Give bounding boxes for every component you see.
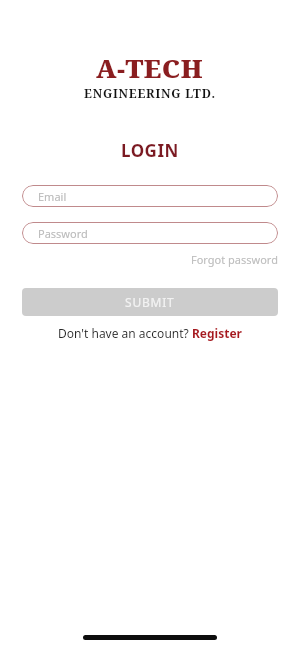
button[interactable]: SUBMIT	[22, 288, 278, 316]
button[interactable]: Forgot password	[191, 252, 278, 267]
staticText: LOGIN	[121, 139, 179, 162]
button[interactable]: Register	[192, 325, 242, 341]
staticText: A-TECH	[96, 50, 204, 85]
staticText: Email	[38, 189, 67, 204]
staticText: Don't have an account?	[58, 325, 192, 341]
button[interactable]: Password	[22, 222, 278, 244]
staticText: Password	[38, 226, 88, 241]
staticText: SUBMIT	[125, 294, 175, 310]
staticText: Register	[192, 325, 242, 341]
staticText: Forgot password	[191, 252, 278, 267]
button[interactable]: Email	[22, 185, 278, 207]
staticText: ENGINEERING LTD.	[84, 85, 216, 101]
